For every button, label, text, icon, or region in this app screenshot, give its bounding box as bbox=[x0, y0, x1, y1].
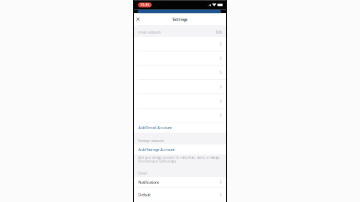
button[interactable]: Edit bbox=[213, 29, 222, 35]
button[interactable]: Close bbox=[133, 13, 143, 25]
staticText: Email bbox=[138, 171, 147, 175]
button[interactable]: Account bbox=[133, 80, 227, 94]
button[interactable]: Add Email Account bbox=[133, 122, 227, 133]
button[interactable]: Notifications bbox=[133, 177, 227, 187]
button[interactable]: Default bbox=[133, 188, 227, 202]
staticText: Storage accounts bbox=[138, 139, 163, 143]
button[interactable]: Account bbox=[133, 66, 227, 79]
staticText: Email accounts bbox=[138, 30, 160, 34]
staticText: 10:46 bbox=[140, 3, 149, 7]
button[interactable]: Account bbox=[133, 37, 227, 51]
button[interactable]: Account bbox=[133, 94, 227, 108]
button[interactable]: Account bbox=[133, 108, 227, 122]
staticText: Notifications bbox=[138, 179, 159, 185]
staticText: Default bbox=[138, 192, 150, 197]
button[interactable]: Add Storage Account bbox=[133, 144, 227, 154]
staticText: Edit bbox=[216, 30, 222, 34]
button[interactable]: Account bbox=[133, 51, 227, 65]
staticText: Add your storage provider to easily shar… bbox=[138, 156, 220, 163]
staticText: Add Storage Account bbox=[138, 147, 174, 152]
staticText: Settings bbox=[172, 17, 187, 22]
staticText: Add Email Account bbox=[138, 125, 171, 130]
